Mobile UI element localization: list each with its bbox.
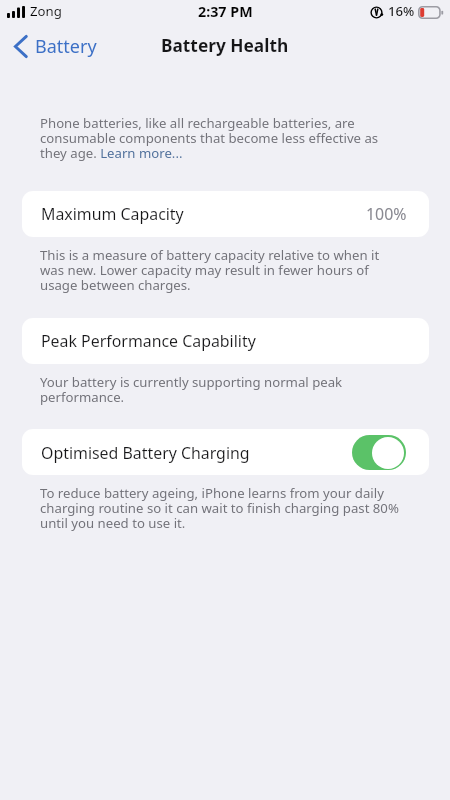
staticText: Peak Performance Capability [41,330,256,352]
staticText: Phone batteries, like all rechargeable b… [40,114,406,162]
staticText: Battery [35,34,97,59]
button[interactable]: Maximum Capacity [22,191,429,237]
button[interactable]: Optimised Battery Charging toggle [352,435,406,470]
staticText: Zong [30,2,62,20]
other: Cellular signal [7,6,25,18]
button[interactable]: Optimised Battery Charging [22,429,429,475]
button[interactable]: Battery [0,34,105,59]
staticText: Maximum Capacity [41,203,184,225]
button[interactable]: Peak Performance Capability [22,318,429,364]
staticText: Optimised Battery Charging [41,442,250,464]
other: Alarm set [370,6,383,19]
other: Battery 16 percent [418,6,444,19]
staticText: Battery Health [161,34,289,58]
staticText: 2:37 PM [198,2,253,21]
staticText: Your battery is currently supporting nor… [40,373,406,406]
staticText: 16% [388,2,415,20]
staticText: To reduce battery ageing, iPhone learns … [40,484,406,532]
staticText: This is a measure of battery capacity re… [40,246,406,294]
staticText: 100% [366,203,407,225]
